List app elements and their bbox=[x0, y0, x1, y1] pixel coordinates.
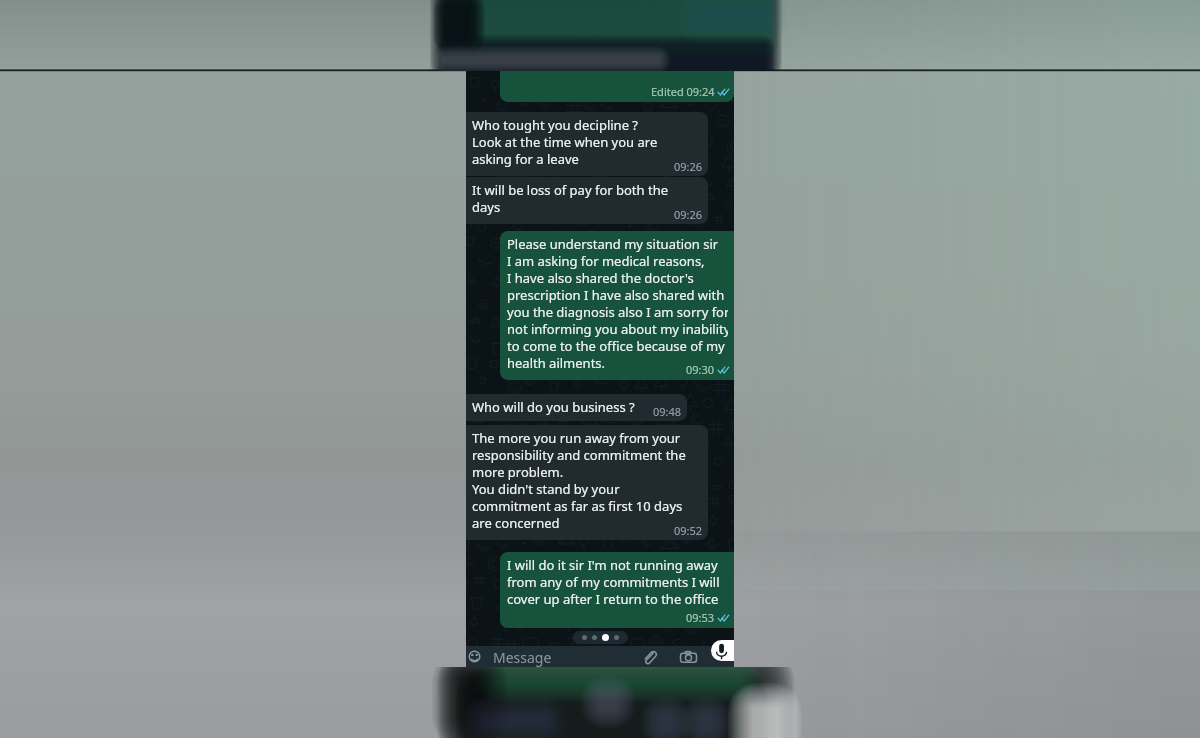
button[interactable]: I will do it sir I'm not running away fr… bbox=[500, 552, 734, 628]
staticText: Who will do you business ? bbox=[472, 398, 635, 416]
staticText: Edited 09:24 bbox=[651, 84, 715, 99]
staticText: Message bbox=[493, 648, 552, 667]
staticText: It will be loss of pay for both the days bbox=[472, 181, 669, 216]
staticText: 09:48 bbox=[653, 404, 682, 419]
staticText: 09:26 bbox=[674, 159, 703, 174]
staticText: 09:52 bbox=[674, 523, 703, 538]
staticText: Please understand my situation sir I am … bbox=[507, 235, 728, 372]
staticText: 09:30 bbox=[686, 362, 715, 377]
button[interactable]: Who will do you business ? bbox=[466, 394, 687, 421]
staticText: 09:53 bbox=[686, 610, 715, 625]
button[interactable]: Edited 09:24 bbox=[500, 71, 734, 102]
staticText: I will do it sir I'm not running away fr… bbox=[507, 556, 720, 608]
staticText: The more you run away from your responsi… bbox=[472, 429, 686, 532]
button[interactable]: It will be loss of pay for both the days bbox=[466, 177, 708, 224]
button[interactable]: Camera bbox=[679, 648, 698, 667]
button[interactable]: Who tought you decipline ? Look at the t… bbox=[466, 112, 708, 176]
staticText: 09:26 bbox=[674, 207, 703, 222]
button[interactable]: Please understand my situation sir I am … bbox=[500, 231, 734, 380]
button[interactable]: Voice message bbox=[711, 640, 734, 661]
staticText: Who tought you decipline ? Look at the t… bbox=[472, 116, 658, 168]
button[interactable]: The more you run away from your responsi… bbox=[466, 425, 708, 540]
button[interactable]: Attach bbox=[640, 648, 659, 667]
button[interactable]: Emoji bbox=[466, 648, 483, 665]
